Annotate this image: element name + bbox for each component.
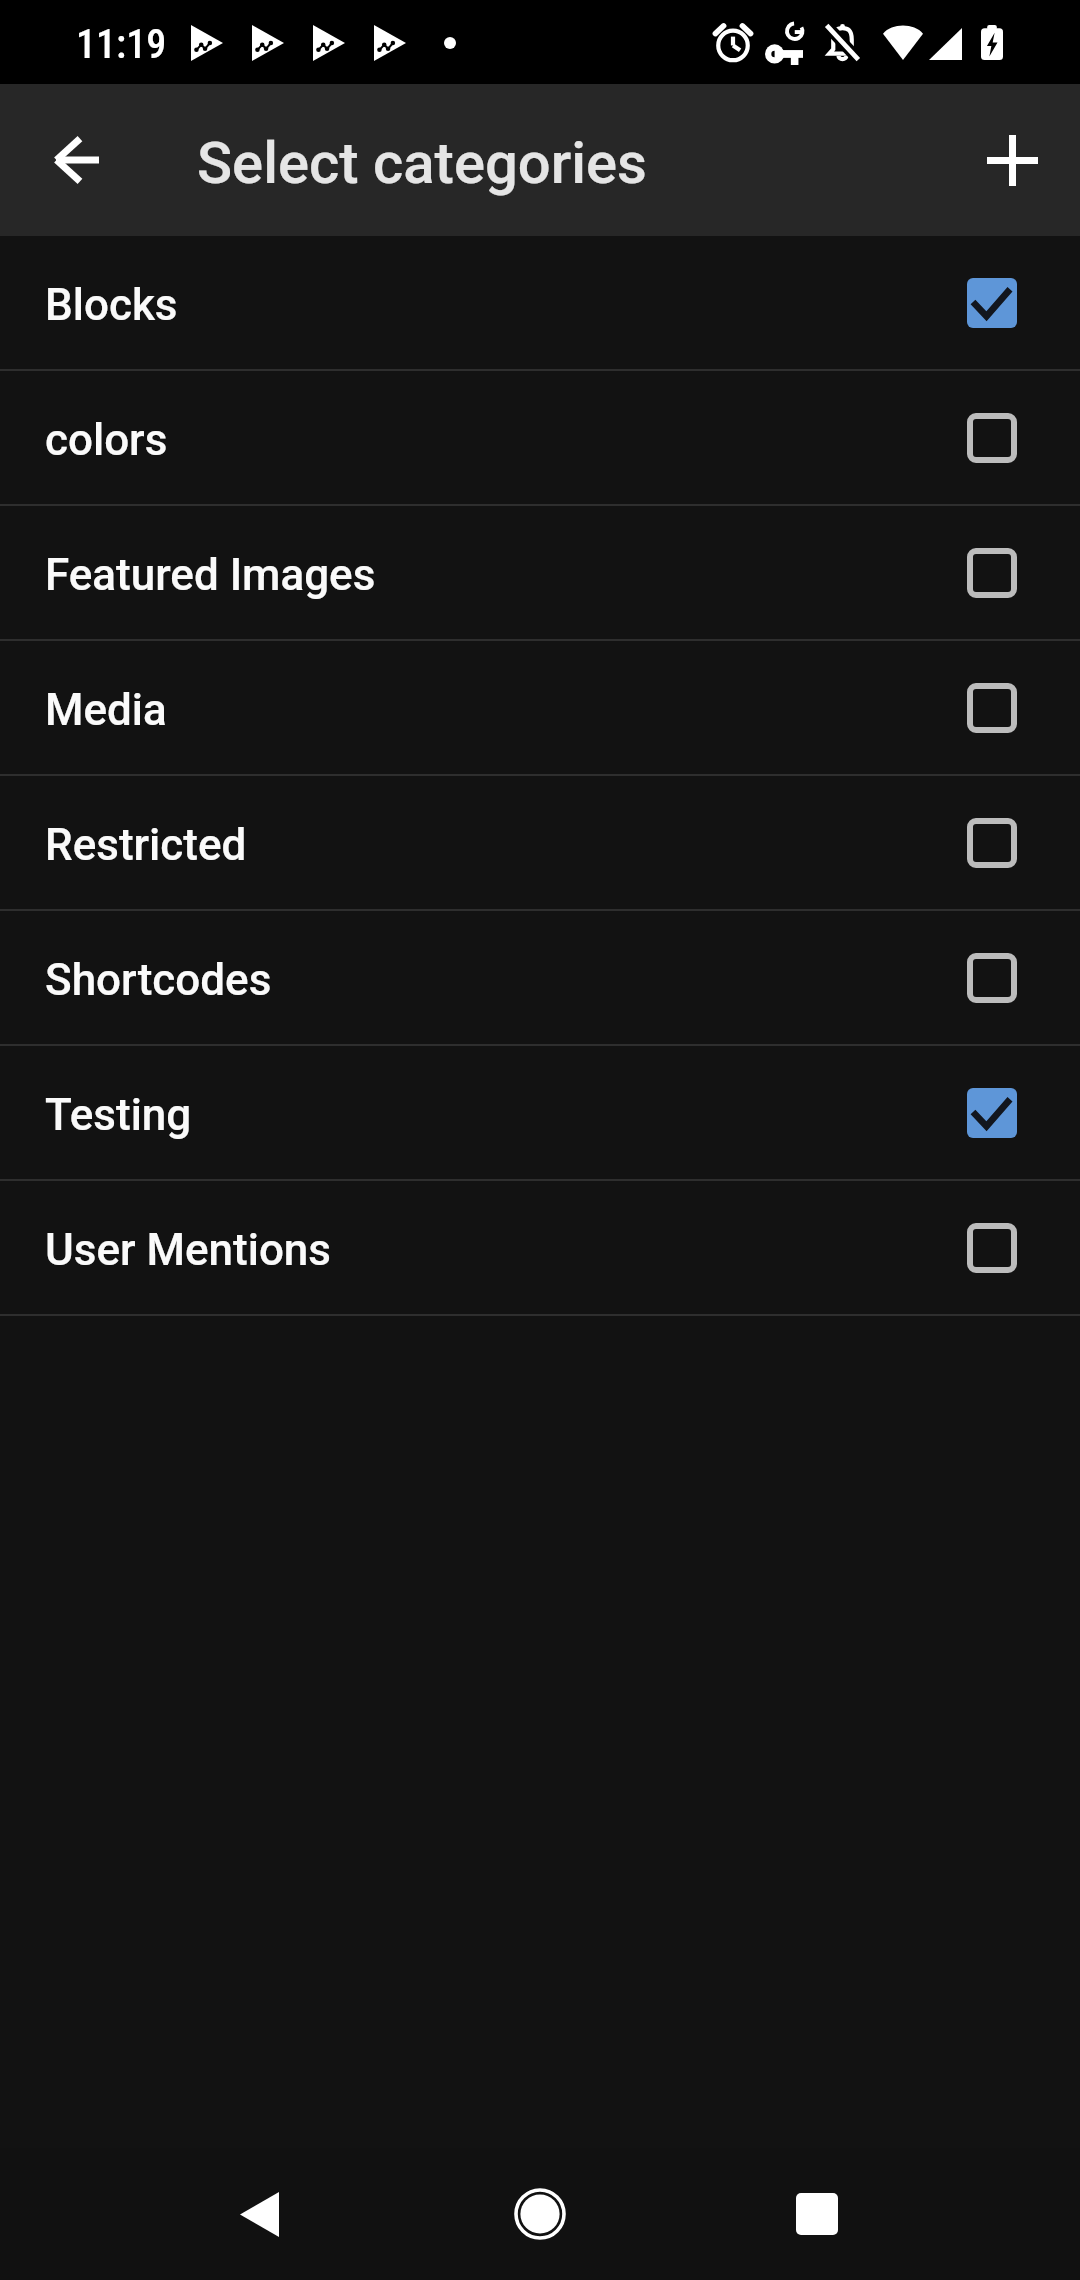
staticText: 11:19 <box>76 21 167 68</box>
button[interactable]: Recent apps <box>757 2154 877 2274</box>
staticText: Restricted <box>45 819 967 871</box>
button[interactable]: Testing <box>0 1046 1080 1181</box>
button[interactable]: colors <box>0 371 1080 506</box>
button[interactable]: Restricted <box>0 776 1080 911</box>
staticText: Media <box>45 684 967 736</box>
button[interactable]: Blocks <box>0 236 1080 371</box>
staticText: colors <box>45 414 967 466</box>
button[interactable]: Media <box>0 641 1080 776</box>
button[interactable]: Home <box>480 2154 600 2274</box>
button[interactable]: Navigate up <box>25 108 129 212</box>
button[interactable]: User Mentions <box>0 1181 1080 1316</box>
staticText: Testing <box>45 1089 967 1141</box>
button[interactable]: Add category <box>960 108 1064 212</box>
staticText: Shortcodes <box>45 954 967 1006</box>
button[interactable]: Shortcodes <box>0 911 1080 1046</box>
staticText: User Mentions <box>45 1224 967 1276</box>
staticText: Featured Images <box>45 549 967 601</box>
staticText: Blocks <box>45 279 967 331</box>
button[interactable]: Featured Images <box>0 506 1080 641</box>
button[interactable]: Back <box>199 2154 319 2274</box>
staticText: Select categories <box>197 129 647 197</box>
